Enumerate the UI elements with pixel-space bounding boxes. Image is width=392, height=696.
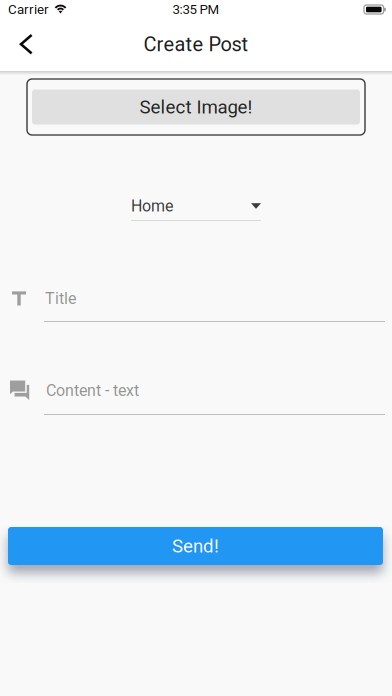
staticText: 3:35 PM <box>172 2 219 17</box>
staticText: Title <box>45 289 76 308</box>
button[interactable]: Select Image! <box>27 79 365 135</box>
staticText: Create Post <box>143 33 248 56</box>
staticText: Select Image! <box>139 96 252 118</box>
staticText: Send! <box>172 535 219 557</box>
button[interactable]: Back <box>4 21 50 67</box>
staticText: Content - text <box>46 381 139 400</box>
button[interactable]: Send! <box>8 527 383 565</box>
staticText: Carrier <box>8 2 49 17</box>
button[interactable]: Home <box>131 196 261 221</box>
staticText: Home <box>131 197 173 215</box>
